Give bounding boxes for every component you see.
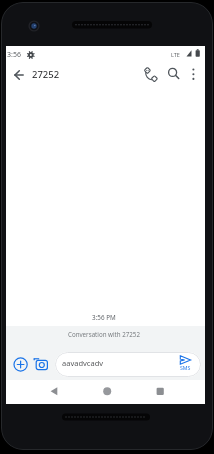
button[interactable] <box>172 351 200 378</box>
button[interactable] <box>146 381 174 402</box>
button[interactable] <box>40 381 68 402</box>
button[interactable] <box>184 65 203 85</box>
staticText: LTE <box>171 51 180 58</box>
button[interactable] <box>163 65 183 85</box>
button[interactable] <box>9 65 29 85</box>
staticText: 3:56 PM <box>92 313 116 322</box>
button[interactable] <box>55 352 201 377</box>
button[interactable] <box>141 65 161 85</box>
button[interactable] <box>31 354 52 375</box>
staticText: Conversation with 27252 <box>68 330 140 338</box>
staticText: 3:56 <box>7 50 21 60</box>
staticText: 27252 <box>32 68 60 81</box>
staticText: SMS <box>180 364 191 371</box>
button[interactable] <box>93 381 121 402</box>
button[interactable] <box>10 354 31 375</box>
staticText: aavadvcadv <box>62 358 104 368</box>
